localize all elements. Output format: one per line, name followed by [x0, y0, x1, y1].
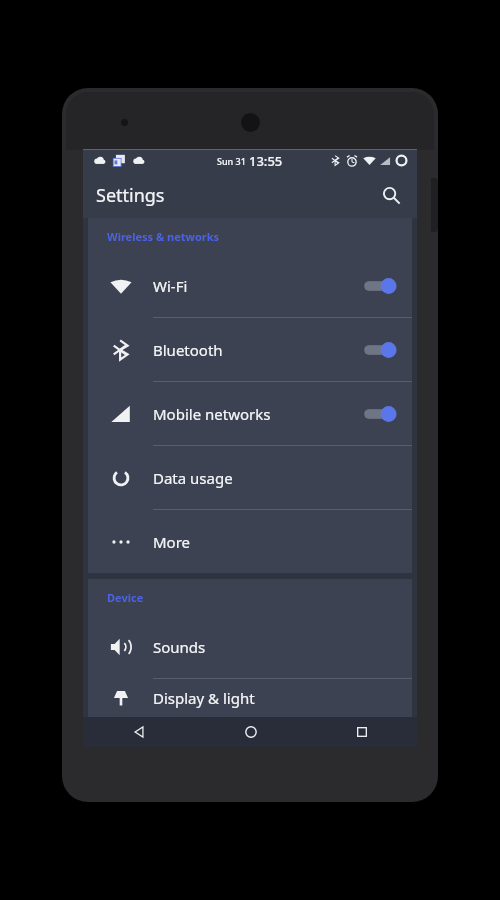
button[interactable]: More	[88, 510, 412, 573]
button[interactable]: Home	[195, 717, 306, 747]
staticText: Sun 31	[217, 155, 246, 167]
button[interactable]: Sounds	[88, 615, 412, 678]
staticText: Wi-Fi	[153, 276, 362, 296]
staticText: Mobile networks	[153, 404, 362, 424]
staticText: Data usage	[153, 468, 412, 488]
staticText: More	[153, 532, 412, 552]
staticText: Sounds	[153, 637, 412, 657]
staticText: Device	[107, 590, 144, 605]
staticText: Bluetooth	[153, 340, 362, 360]
button[interactable]: Back	[83, 717, 195, 747]
button[interactable]: Display & light	[88, 679, 412, 717]
button[interactable]: Recents	[306, 717, 417, 747]
staticText: 13:55	[249, 152, 283, 170]
staticText: Wireless & networks	[107, 229, 220, 244]
staticText: Settings	[96, 183, 165, 208]
button[interactable]: Wi-Fi	[88, 254, 412, 317]
button[interactable]: Mobile networks	[88, 382, 412, 445]
button[interactable]: Search	[371, 175, 411, 215]
button[interactable]: Bluetooth	[88, 318, 412, 381]
button[interactable]: Data usage	[88, 446, 412, 509]
staticText: Display & light	[153, 688, 412, 708]
